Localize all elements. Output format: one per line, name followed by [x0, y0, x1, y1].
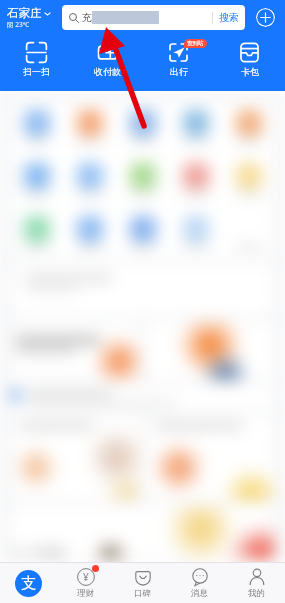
staticText: ¥ — [83, 570, 89, 584]
button[interactable]: 我的 — [228, 563, 285, 603]
staticText: 收付款 — [94, 66, 121, 77]
staticText: 阴 23℃ — [7, 20, 30, 29]
staticText: 我的 — [248, 588, 265, 599]
staticText: 石家庄 — [7, 6, 42, 20]
button[interactable]: 查到站 — [143, 34, 214, 91]
button[interactable]: 扫一扫 — [0, 34, 72, 91]
button[interactable]: 消息 — [171, 563, 228, 603]
staticText: 查到站 — [187, 40, 204, 47]
staticText: 消息 — [191, 588, 208, 599]
staticText: 出行 — [170, 66, 188, 77]
button[interactable]: 添加 Add — [256, 8, 275, 27]
staticText: 口碑 — [134, 588, 151, 599]
button[interactable]: 卡包 — [214, 34, 285, 91]
button[interactable]: 口碑 — [114, 563, 171, 603]
staticText: 搜索 — [219, 11, 239, 24]
staticText: 扫一扫 — [23, 66, 50, 77]
staticText: 充 — [82, 11, 92, 24]
staticText: 近一年涨跌幅 — [14, 547, 65, 558]
button[interactable]: 搜索 — [213, 5, 245, 30]
button[interactable]: 收付款 — [72, 34, 143, 91]
button[interactable]: ¥ — [57, 563, 114, 603]
staticText: 卡包 — [241, 66, 259, 77]
button[interactable]: 石家庄 — [5, 4, 53, 31]
button[interactable]: 充 — [62, 5, 245, 30]
button[interactable]: 支付宝首页 — [0, 563, 57, 603]
staticText: 理财 — [77, 588, 94, 599]
staticText: 支 — [21, 574, 36, 593]
